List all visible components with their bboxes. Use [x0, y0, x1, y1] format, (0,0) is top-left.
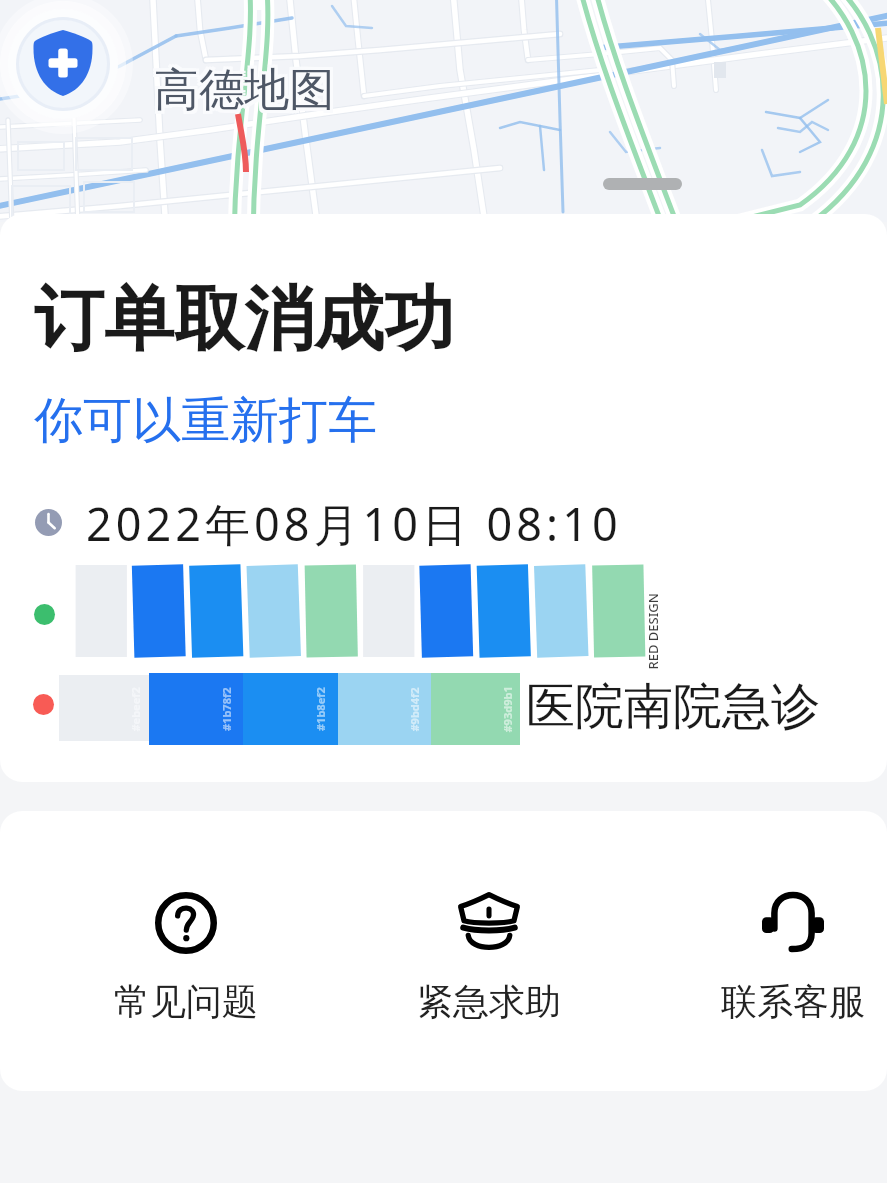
button[interactable]: Expand sheet: [560, 158, 724, 210]
button[interactable]: 常见问题: [96, 892, 276, 1024]
staticText: 高德地图: [151, 59, 331, 116]
staticText: #1b8ef2: [313, 687, 327, 731]
staticText: 高德地图: [157, 59, 337, 116]
staticText: #93d9b1: [499, 685, 513, 732]
staticText: 紧急求助: [417, 979, 561, 1024]
staticText: 联系客服: [721, 979, 865, 1024]
staticText: 高德地图: [154, 59, 334, 116]
other: 常见问题: [155, 892, 217, 954]
staticText: 医院南院急诊: [526, 676, 820, 738]
button[interactable]: 紧急求助: [399, 892, 579, 1024]
other: 联系客服: [762, 892, 824, 954]
staticText: #1b78f2: [219, 687, 233, 731]
staticText: #9bd4f2: [406, 686, 420, 731]
staticText: 高德地图: [151, 65, 331, 122]
staticText: 高德地图: [157, 65, 337, 122]
other: 紧急求助: [458, 892, 520, 954]
staticText: 高德地图: [154, 65, 334, 122]
staticText: 高德地图: [151, 62, 331, 119]
staticText: RED DESIGN: [643, 592, 661, 669]
staticText: 订单取消成功: [34, 276, 454, 364]
staticText: 高德地图: [157, 62, 337, 119]
staticText: 你可以重新打车: [34, 390, 377, 452]
staticText: 2022年08月10日 08:10: [86, 493, 622, 554]
staticText: 常见问题: [114, 979, 258, 1024]
button[interactable]: 联系客服: [703, 892, 883, 1024]
staticText: 高德地图: [154, 62, 334, 119]
staticText: #ebeef2: [127, 686, 141, 731]
